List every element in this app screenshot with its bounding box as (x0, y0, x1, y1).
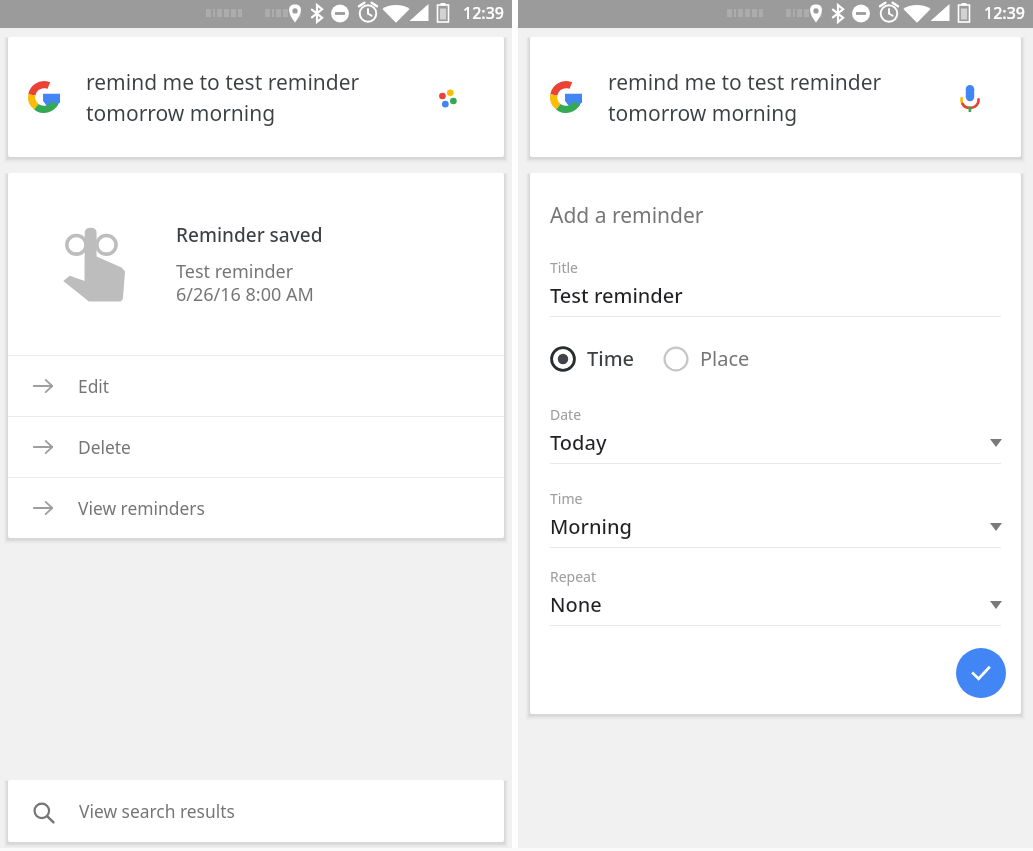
staticText: Add a reminder (550, 201, 704, 230)
staticText: Date (550, 405, 582, 424)
staticText: Delete (78, 435, 131, 459)
button[interactable]: View reminders (8, 478, 504, 538)
button[interactable]: Delete (8, 417, 504, 477)
button[interactable]: Edit (8, 356, 504, 416)
button[interactable]: View search results (8, 780, 504, 842)
staticText: remind me to test reminder tomorrow morn… (608, 68, 918, 127)
button[interactable]: Voice search (918, 37, 1021, 157)
staticText: Place (700, 345, 750, 372)
staticText: remind me to test reminder tomorrow morn… (86, 68, 392, 127)
staticText: Today (550, 429, 989, 456)
button[interactable]: Google Assistant (392, 37, 504, 157)
staticText: Test reminder 6/26/16 8:00 AM (176, 259, 314, 306)
button[interactable]: Time (550, 345, 635, 372)
button[interactable]: Morning (550, 513, 1001, 540)
button[interactable]: Today (550, 429, 1001, 456)
button[interactable]: None (550, 591, 1001, 618)
staticText: Edit (78, 374, 110, 398)
staticText: View search results (79, 799, 235, 823)
staticText: Time (587, 345, 635, 372)
staticText: Reminder saved (176, 222, 323, 248)
staticText: Morning (550, 513, 989, 540)
staticText: Repeat (550, 567, 597, 586)
staticText: Test reminder (550, 282, 683, 309)
staticText: 12:39 (984, 2, 1025, 24)
staticText: Time (550, 489, 583, 508)
staticText: None (550, 591, 989, 618)
staticText: 12:39 (463, 2, 504, 24)
staticText: Title (550, 258, 578, 277)
button[interactable]: Place (663, 345, 750, 372)
button[interactable]: Save reminder (956, 648, 1006, 698)
staticText: View reminders (78, 496, 205, 520)
